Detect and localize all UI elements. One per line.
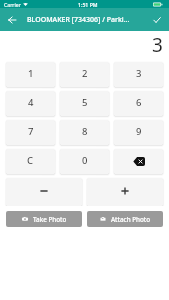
staticText: 3 <box>136 67 142 80</box>
button[interactable]: 4 <box>6 91 55 116</box>
button[interactable]: 0 <box>60 149 109 174</box>
staticText: 2 <box>82 67 88 80</box>
button[interactable]: Minus <box>6 178 82 206</box>
staticText: C <box>27 154 34 167</box>
button[interactable]: 7 <box>6 120 55 145</box>
staticText: 0 <box>82 154 88 167</box>
staticText: 5 <box>82 96 88 109</box>
button[interactable]: Backspace <box>114 149 163 174</box>
button[interactable]: 1 <box>6 62 55 87</box>
staticText: Carrier <box>4 1 21 8</box>
button[interactable]: C <box>6 149 55 174</box>
staticText: BLOOMAKER [734306] / Parki… <box>27 15 147 25</box>
button[interactable]: 5 <box>60 91 109 116</box>
button[interactable]: Take Photo <box>6 211 82 227</box>
staticText: 3 <box>152 32 163 58</box>
button[interactable]: 6 <box>114 91 163 116</box>
button[interactable]: 2 <box>60 62 109 87</box>
button[interactable]: 3 <box>114 62 163 87</box>
button[interactable]: Back <box>4 12 19 27</box>
button[interactable]: Plus <box>87 178 163 206</box>
staticText: 4 <box>28 96 34 109</box>
staticText: Take Photo <box>33 215 67 224</box>
staticText: 9 <box>136 125 142 138</box>
staticText: 8 <box>82 125 88 138</box>
button[interactable]: Attach Photo <box>87 211 163 227</box>
staticText: 6 <box>136 96 142 109</box>
button[interactable]: 9 <box>114 120 163 145</box>
staticText: 7 <box>28 125 34 138</box>
staticText: 1:51 PM <box>78 1 98 8</box>
staticText: 1 <box>28 67 34 80</box>
button[interactable]: Done <box>150 13 163 26</box>
button[interactable]: 8 <box>60 120 109 145</box>
staticText: Attach Photo <box>111 215 151 224</box>
